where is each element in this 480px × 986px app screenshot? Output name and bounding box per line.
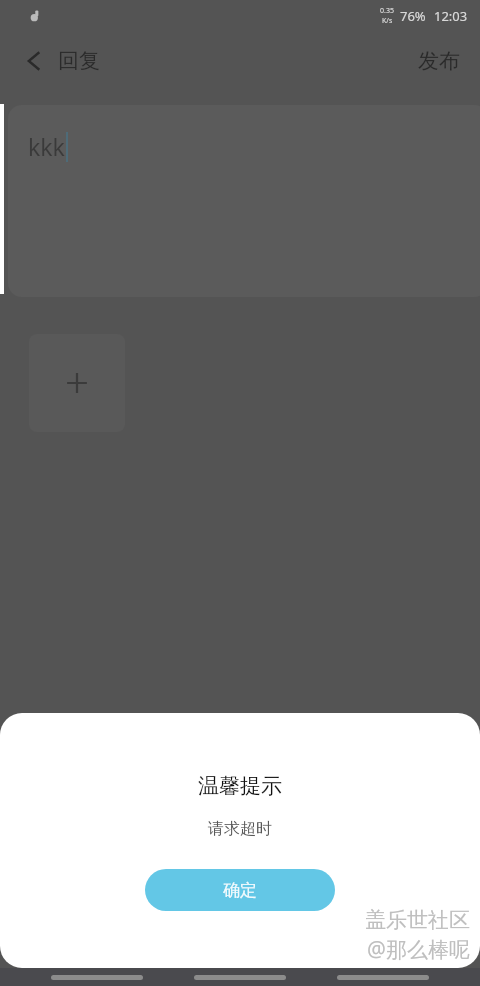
staticText: 0.35	[380, 6, 394, 16]
staticText: @那么棒呢	[365, 935, 468, 964]
button[interactable]: Back	[0, 38, 124, 84]
button[interactable]: Navigation key	[51, 975, 143, 980]
staticText: kkk	[28, 131, 65, 162]
button[interactable]: 确定	[145, 869, 335, 911]
staticText: 确定	[223, 880, 257, 901]
button[interactable]: Navigation key	[194, 975, 286, 980]
staticText: 76%	[400, 7, 426, 25]
other: Back	[24, 51, 44, 71]
staticText: K/s	[382, 16, 393, 26]
staticText: 请求超时	[208, 819, 272, 839]
staticText: 12:03	[434, 7, 468, 25]
staticText: 盖乐世社区	[363, 907, 468, 933]
button[interactable]: 发布	[398, 38, 480, 84]
staticText: 温馨提示	[198, 773, 282, 799]
staticText: 发布	[418, 48, 460, 74]
button[interactable]: Navigation key	[337, 975, 429, 980]
staticText: 盖乐世社区	[365, 907, 470, 933]
staticText: @那么棒呢	[367, 935, 470, 964]
staticText: 回复	[58, 48, 100, 74]
